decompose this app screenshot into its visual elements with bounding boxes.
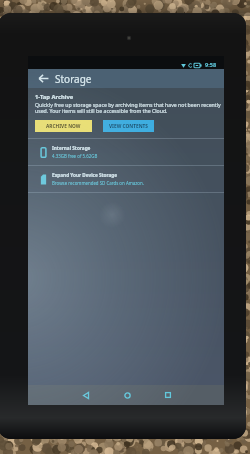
staticText: 4.33GB free of 5.62GB — [52, 153, 98, 159]
button[interactable]: Recents — [158, 386, 178, 404]
staticText: Quickly free up storage space by archivi… — [35, 101, 221, 115]
staticText: Expand Your Device Storage — [52, 172, 118, 178]
staticText: Browse recommended SD Cards on Amazon. — [52, 180, 144, 186]
staticText: VIEW CONTENTS — [109, 123, 148, 130]
staticText: ARCHIVE NOW — [46, 123, 81, 130]
button[interactable]: VIEW CONTENTS — [103, 120, 154, 132]
button[interactable]: ARCHIVE NOW — [35, 120, 92, 132]
staticText: 9:58 — [205, 61, 217, 69]
button[interactable]: Back — [36, 71, 51, 86]
button[interactable]: Expand Your Device Storage — [28, 166, 224, 192]
staticText: Internal Storage — [52, 145, 91, 151]
button[interactable]: Internal Storage — [28, 139, 224, 165]
staticText: 1-Tap Archive — [35, 93, 74, 101]
button[interactable]: Home — [117, 386, 137, 404]
button[interactable]: Back — [76, 386, 96, 404]
staticText: Storage — [55, 72, 92, 86]
